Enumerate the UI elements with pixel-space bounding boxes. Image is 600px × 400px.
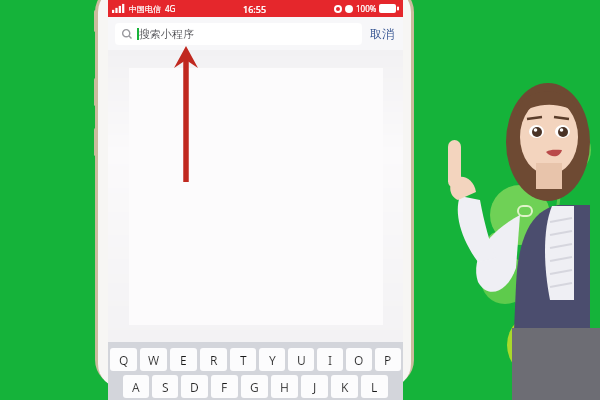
staticText: Y	[269, 352, 276, 368]
staticText: H	[280, 379, 289, 395]
staticText: R	[210, 352, 218, 368]
staticText: 16:55	[243, 3, 267, 15]
staticText: 搜索小程序	[139, 27, 194, 41]
button[interactable]: E	[170, 348, 197, 371]
staticText: 取消	[370, 26, 394, 41]
button[interactable]: W	[140, 348, 167, 371]
button[interactable]: I	[317, 348, 343, 371]
button[interactable]: 取消	[368, 23, 396, 44]
staticText: U	[297, 352, 306, 368]
button[interactable]: T	[230, 348, 256, 371]
button[interactable]: H	[271, 375, 298, 398]
button[interactable]: Q	[110, 348, 137, 371]
button[interactable]: F	[211, 375, 238, 398]
staticText: 中国电信	[129, 4, 161, 14]
button[interactable]: D	[181, 375, 208, 398]
staticText: F	[221, 379, 228, 395]
button[interactable]: R	[200, 348, 227, 371]
button[interactable]: G	[241, 375, 268, 398]
button[interactable]: J	[301, 375, 328, 398]
staticText: Q	[119, 352, 129, 368]
button[interactable]: S	[152, 375, 178, 398]
staticText: G	[250, 379, 259, 395]
button[interactable]: Y	[259, 348, 285, 371]
staticText: K	[341, 379, 349, 395]
button[interactable]: 搜索小程序	[115, 23, 362, 45]
button[interactable]: L	[361, 375, 388, 398]
staticText: L	[371, 379, 378, 395]
staticText: S	[162, 379, 169, 395]
staticText: W	[148, 352, 160, 368]
staticText: 100%	[356, 3, 377, 14]
button[interactable]: A	[123, 375, 149, 398]
staticText: E	[180, 352, 187, 368]
staticText: P	[384, 352, 392, 368]
button[interactable]: K	[331, 375, 358, 398]
staticText: D	[190, 379, 199, 395]
button[interactable]: P	[375, 348, 401, 371]
staticText: I	[328, 352, 333, 368]
staticText: T	[240, 352, 247, 368]
button[interactable]: U	[288, 348, 314, 371]
staticText: J	[313, 379, 317, 395]
button[interactable]: O	[346, 348, 372, 371]
staticText: O	[354, 352, 364, 368]
staticText: 4G	[165, 3, 176, 14]
staticText: A	[132, 379, 140, 395]
